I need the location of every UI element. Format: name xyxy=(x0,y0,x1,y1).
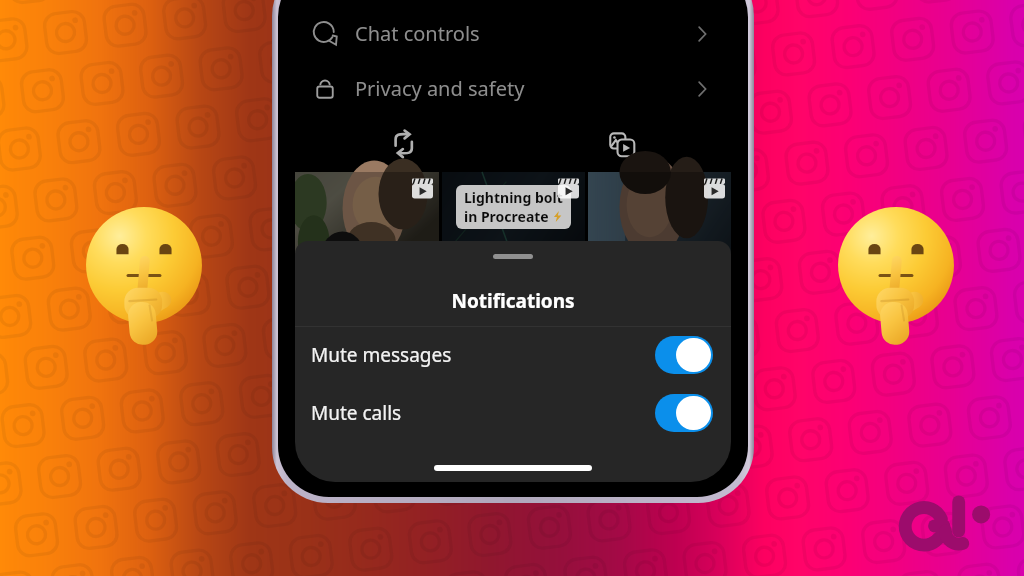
staticText: Notifications xyxy=(295,288,731,314)
button[interactable]: Mute messages xyxy=(295,327,731,383)
staticText: in Procreate xyxy=(464,207,549,226)
staticText: Privacy and safety xyxy=(355,75,525,102)
button[interactable]: Privacy and safety xyxy=(295,61,731,116)
button[interactable]: Media xyxy=(513,116,731,172)
button[interactable]: Reels xyxy=(295,116,513,172)
button[interactable]: Media item xyxy=(442,172,585,268)
button[interactable]: Mute calls xyxy=(295,385,731,441)
button[interactable]: Chat controls xyxy=(295,6,731,61)
staticText: Mute calls xyxy=(311,400,402,426)
button[interactable]: Media item xyxy=(295,172,439,268)
staticText: Mute messages xyxy=(311,342,452,368)
staticText: Lightning bolt xyxy=(464,188,563,207)
button[interactable]: Media item xyxy=(588,172,731,268)
staticText: Chat controls xyxy=(355,20,480,47)
